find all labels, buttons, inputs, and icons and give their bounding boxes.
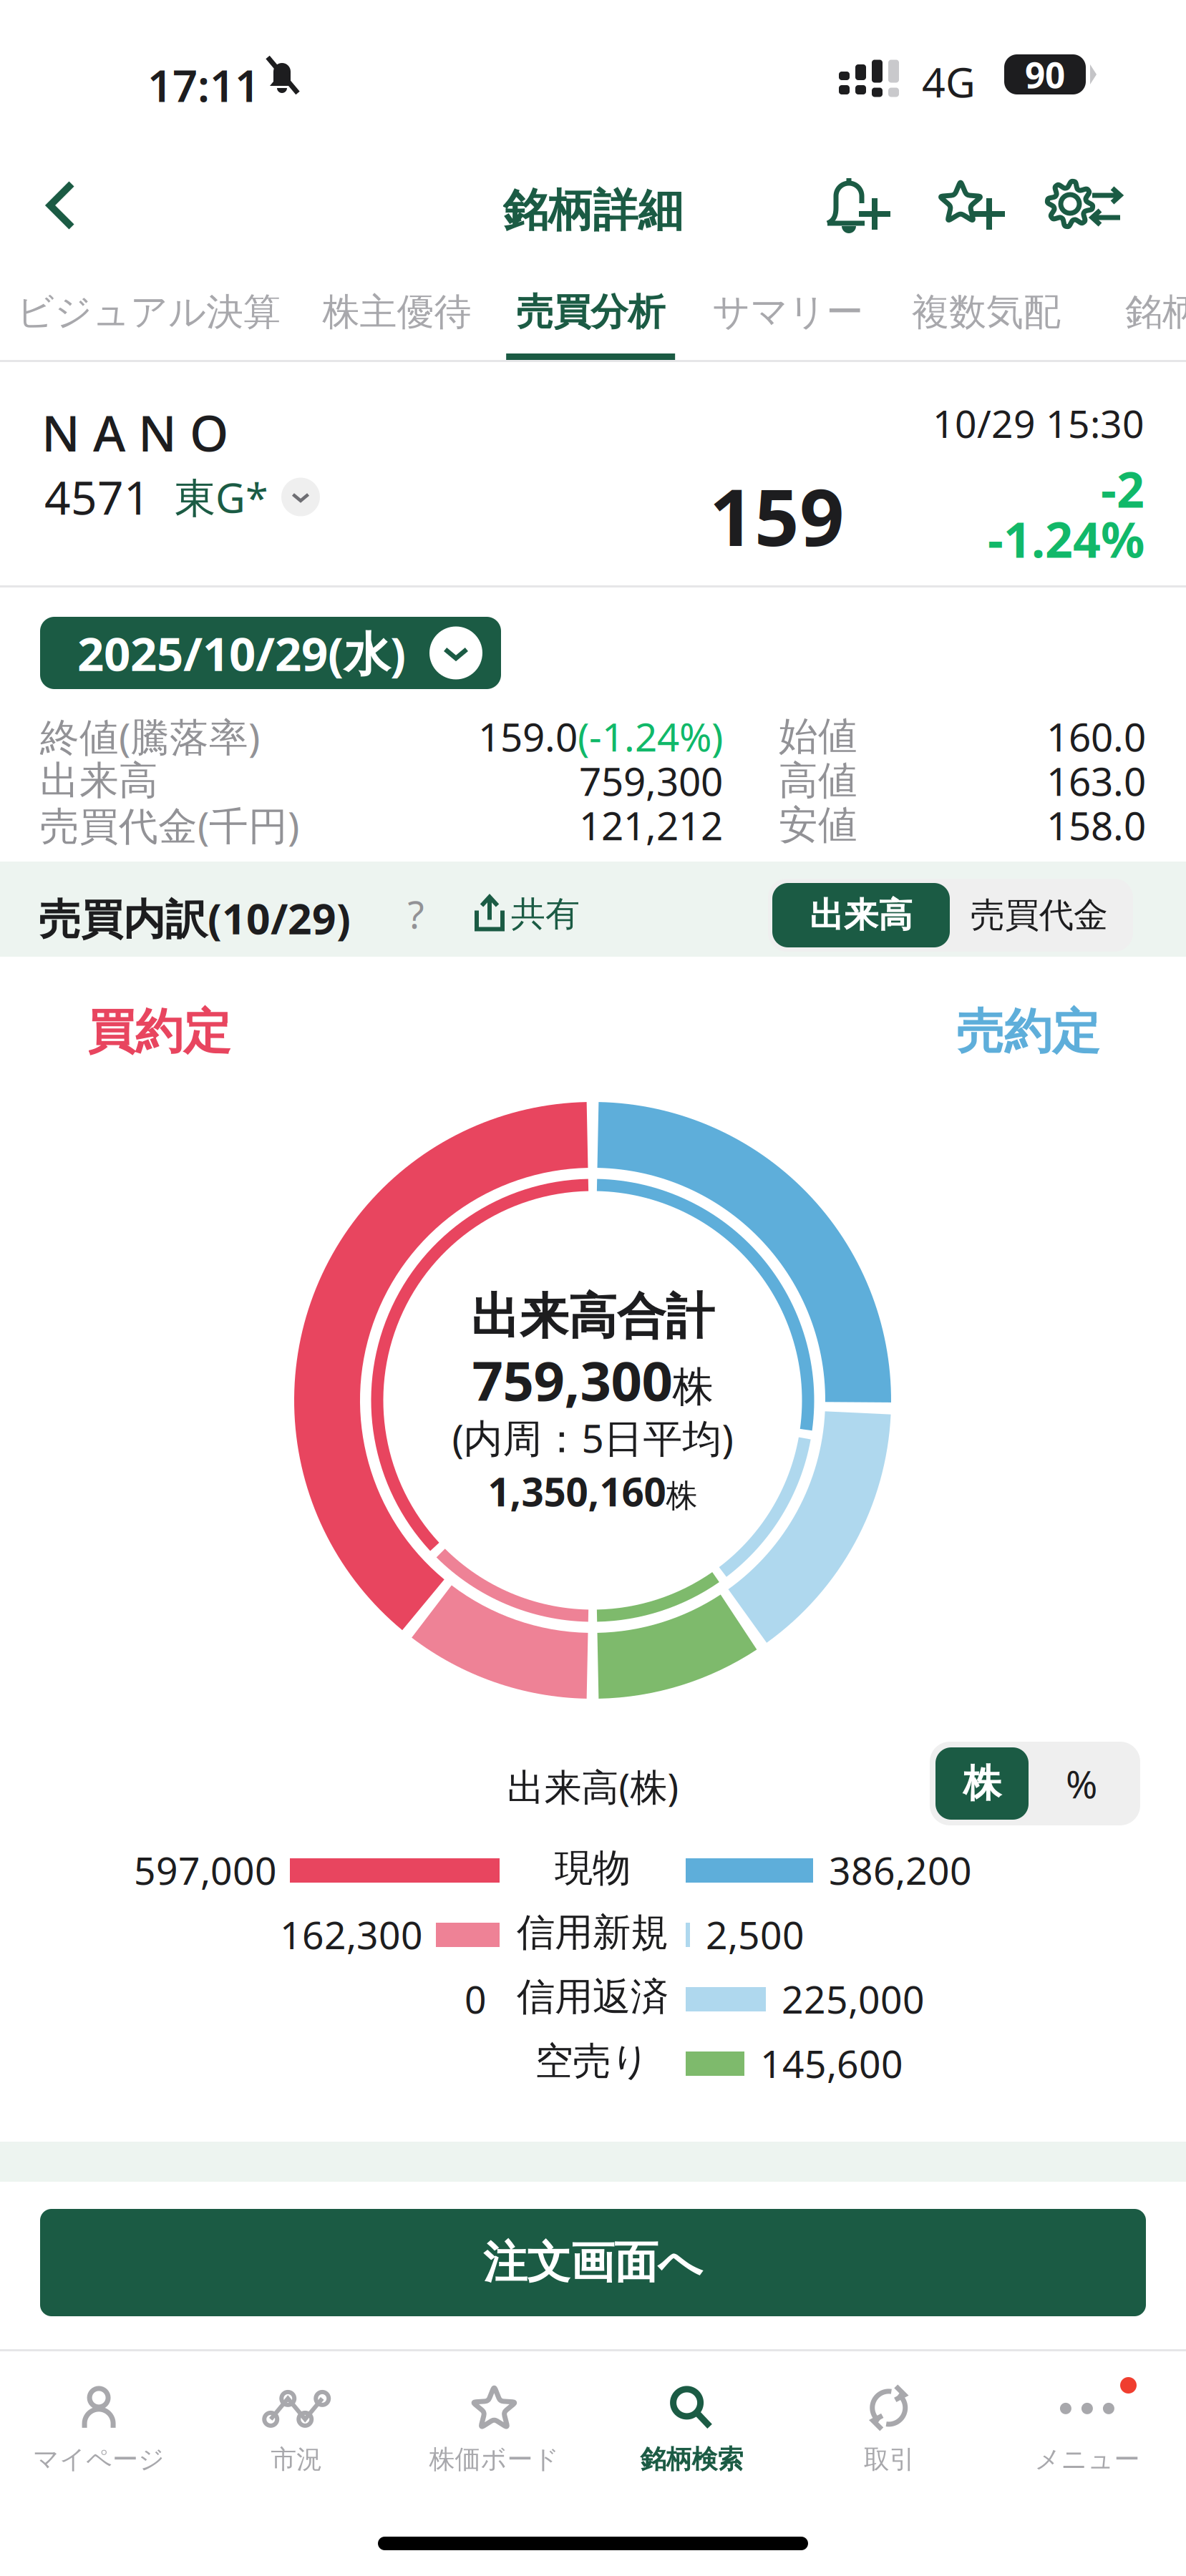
staticText: 株 bbox=[672, 1362, 713, 1412]
staticText: 158.0 bbox=[1046, 799, 1146, 851]
button[interactable]: 売買分析 bbox=[475, 273, 675, 360]
staticText: 売買内訳(10/29) bbox=[39, 890, 351, 946]
button[interactable]: 2025/10/29(水) bbox=[40, 617, 501, 689]
button[interactable]: 複数気配 bbox=[870, 273, 1065, 360]
button[interactable]: ヘルプ bbox=[395, 893, 437, 935]
staticText: 始値 bbox=[779, 712, 857, 760]
button[interactable]: 銘柄情 bbox=[1065, 273, 1186, 360]
button[interactable]: 株 bbox=[935, 1747, 1029, 1820]
button[interactable]: 共有 bbox=[474, 893, 580, 935]
staticText: サマリー bbox=[712, 289, 863, 335]
staticText: 銘柄詳細 bbox=[503, 183, 683, 238]
staticText: 597,000 bbox=[134, 1845, 277, 1895]
staticText: 159.0 bbox=[478, 710, 578, 762]
staticText: (-1.24%) bbox=[578, 710, 723, 762]
staticText: 銘柄情 bbox=[1125, 289, 1186, 335]
staticText: 出来高(株) bbox=[507, 1762, 679, 1811]
staticText: 出来高 bbox=[40, 757, 158, 805]
staticText: (内周：5日平均) bbox=[452, 1412, 733, 1464]
button[interactable]: 株価ボード bbox=[395, 2364, 593, 2493]
staticText: 終値(騰落率) bbox=[40, 710, 260, 762]
staticText: 386,200 bbox=[829, 1845, 972, 1895]
staticText: N A N O bbox=[42, 399, 228, 465]
staticText: メニュー bbox=[1035, 2444, 1140, 2475]
staticText: 2025/10/29(水) bbox=[77, 622, 406, 684]
button[interactable]: サマリー bbox=[675, 273, 870, 360]
staticText: 759,300 bbox=[579, 755, 723, 807]
button[interactable]: ビジュアル決算 bbox=[16, 273, 281, 360]
button[interactable]: 売買代金 bbox=[950, 883, 1129, 947]
button[interactable]: 戻る bbox=[21, 166, 100, 245]
button[interactable]: メニュー bbox=[988, 2364, 1186, 2493]
staticText: 買約定 bbox=[87, 1002, 231, 1061]
staticText: 10/29 15:30 bbox=[933, 398, 1144, 449]
staticText: 160.0 bbox=[1046, 710, 1146, 762]
staticText: 90 bbox=[1025, 51, 1065, 98]
staticText: 空売り bbox=[535, 2038, 650, 2085]
button[interactable]: 出来高 bbox=[772, 883, 950, 947]
button[interactable]: 取引 bbox=[791, 2364, 988, 2493]
button[interactable]: お気に入り追加 bbox=[938, 173, 1009, 235]
staticText: ビジュアル決算 bbox=[16, 289, 281, 335]
staticText: 4G bbox=[922, 54, 976, 109]
button[interactable]: 設定 bbox=[1046, 173, 1124, 235]
staticText: -2 bbox=[1101, 457, 1144, 521]
button[interactable]: アラート追加 bbox=[825, 173, 893, 235]
staticText: 共有 bbox=[511, 893, 580, 935]
staticText: 株 bbox=[963, 1760, 1001, 1807]
staticText: 1,350,160 bbox=[488, 1465, 666, 1517]
staticText: 市況 bbox=[271, 2444, 322, 2475]
staticText: 売約定 bbox=[956, 1002, 1100, 1061]
staticText: 東G* bbox=[175, 470, 268, 524]
staticText: 株価ボード bbox=[429, 2444, 559, 2475]
staticText: 株主優待 bbox=[323, 289, 471, 335]
button[interactable]: % bbox=[1029, 1747, 1134, 1820]
staticText: 159 bbox=[709, 464, 845, 568]
staticText: 2,500 bbox=[706, 1909, 805, 1960]
button[interactable]: 市場切替 bbox=[281, 478, 320, 516]
staticText: 現物 bbox=[555, 1845, 631, 1892]
button[interactable]: 市況 bbox=[198, 2364, 395, 2493]
staticText: 複数気配 bbox=[912, 289, 1061, 335]
staticText: 4571 bbox=[44, 467, 150, 527]
staticText: 安値 bbox=[779, 801, 857, 849]
staticText: 信用新規 bbox=[517, 1909, 669, 1956]
staticText: 株 bbox=[666, 1477, 697, 1515]
staticText: 売買代金(千円) bbox=[40, 799, 299, 851]
staticText: 225,000 bbox=[782, 1974, 925, 2024]
staticText: 121,212 bbox=[579, 799, 723, 851]
staticText: 163.0 bbox=[1046, 755, 1146, 807]
button[interactable]: 株主優待 bbox=[281, 273, 475, 360]
staticText: 高値 bbox=[779, 757, 857, 805]
button[interactable]: 注文画面へ bbox=[40, 2209, 1146, 2316]
staticText: 取引 bbox=[864, 2444, 915, 2475]
staticText: 信用返済 bbox=[517, 1974, 669, 2020]
staticText: % bbox=[1066, 1758, 1097, 1809]
staticText: 出来高合計 bbox=[471, 1287, 714, 1346]
staticText: 162,300 bbox=[280, 1909, 423, 1960]
staticText: -1.24% bbox=[988, 507, 1144, 571]
staticText: 145,600 bbox=[760, 2038, 903, 2089]
staticText: 出来高 bbox=[810, 894, 913, 936]
staticText: 0 bbox=[465, 1974, 487, 2024]
button[interactable]: マイページ bbox=[0, 2364, 198, 2493]
staticText: マイページ bbox=[33, 2444, 165, 2475]
staticText: 759,300 bbox=[472, 1343, 672, 1416]
staticText: 注文画面へ bbox=[483, 2236, 703, 2289]
staticText: 銘柄検索 bbox=[640, 2444, 743, 2475]
staticText: 売買分析 bbox=[516, 289, 665, 335]
staticText: ? bbox=[408, 888, 424, 939]
button[interactable]: 銘柄検索 bbox=[593, 2364, 791, 2493]
staticText: 17:11 bbox=[147, 56, 260, 114]
staticText: 売買代金 bbox=[971, 894, 1108, 936]
